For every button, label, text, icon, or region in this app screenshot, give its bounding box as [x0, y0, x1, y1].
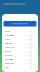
- staticText: Stay informed with notifications: [2, 3, 25, 5]
- button[interactable]: Accessibility: [4, 57, 32, 61]
- button[interactable]: Help & support: [4, 61, 32, 65]
- button[interactable]: Notifications: [4, 41, 32, 45]
- button[interactable]: Storage: [4, 49, 32, 53]
- staticText: Storage: [4, 51, 10, 52]
- staticText: Accessibility: [4, 59, 12, 60]
- staticText: Appearance: [4, 47, 14, 48]
- staticText: About: [4, 67, 8, 68]
- button[interactable]: Account details: [4, 33, 32, 37]
- staticText: Profile: [4, 31, 9, 32]
- button[interactable]: Turn on notifications: [3, 21, 36, 26]
- button[interactable]: Language: [4, 53, 32, 57]
- staticText: Help & support: [4, 63, 14, 64]
- staticText: Notifications: [4, 43, 12, 44]
- staticText: Account details: [4, 35, 14, 36]
- button[interactable]: Profile: [4, 29, 32, 33]
- button[interactable]: Privacy: [4, 37, 32, 41]
- button[interactable]: Appearance: [4, 45, 32, 49]
- staticText: Turn on notifications: [12, 23, 28, 25]
- staticText: Privacy: [4, 39, 10, 40]
- staticText: Language: [4, 55, 12, 56]
- button[interactable]: About: [4, 65, 32, 69]
